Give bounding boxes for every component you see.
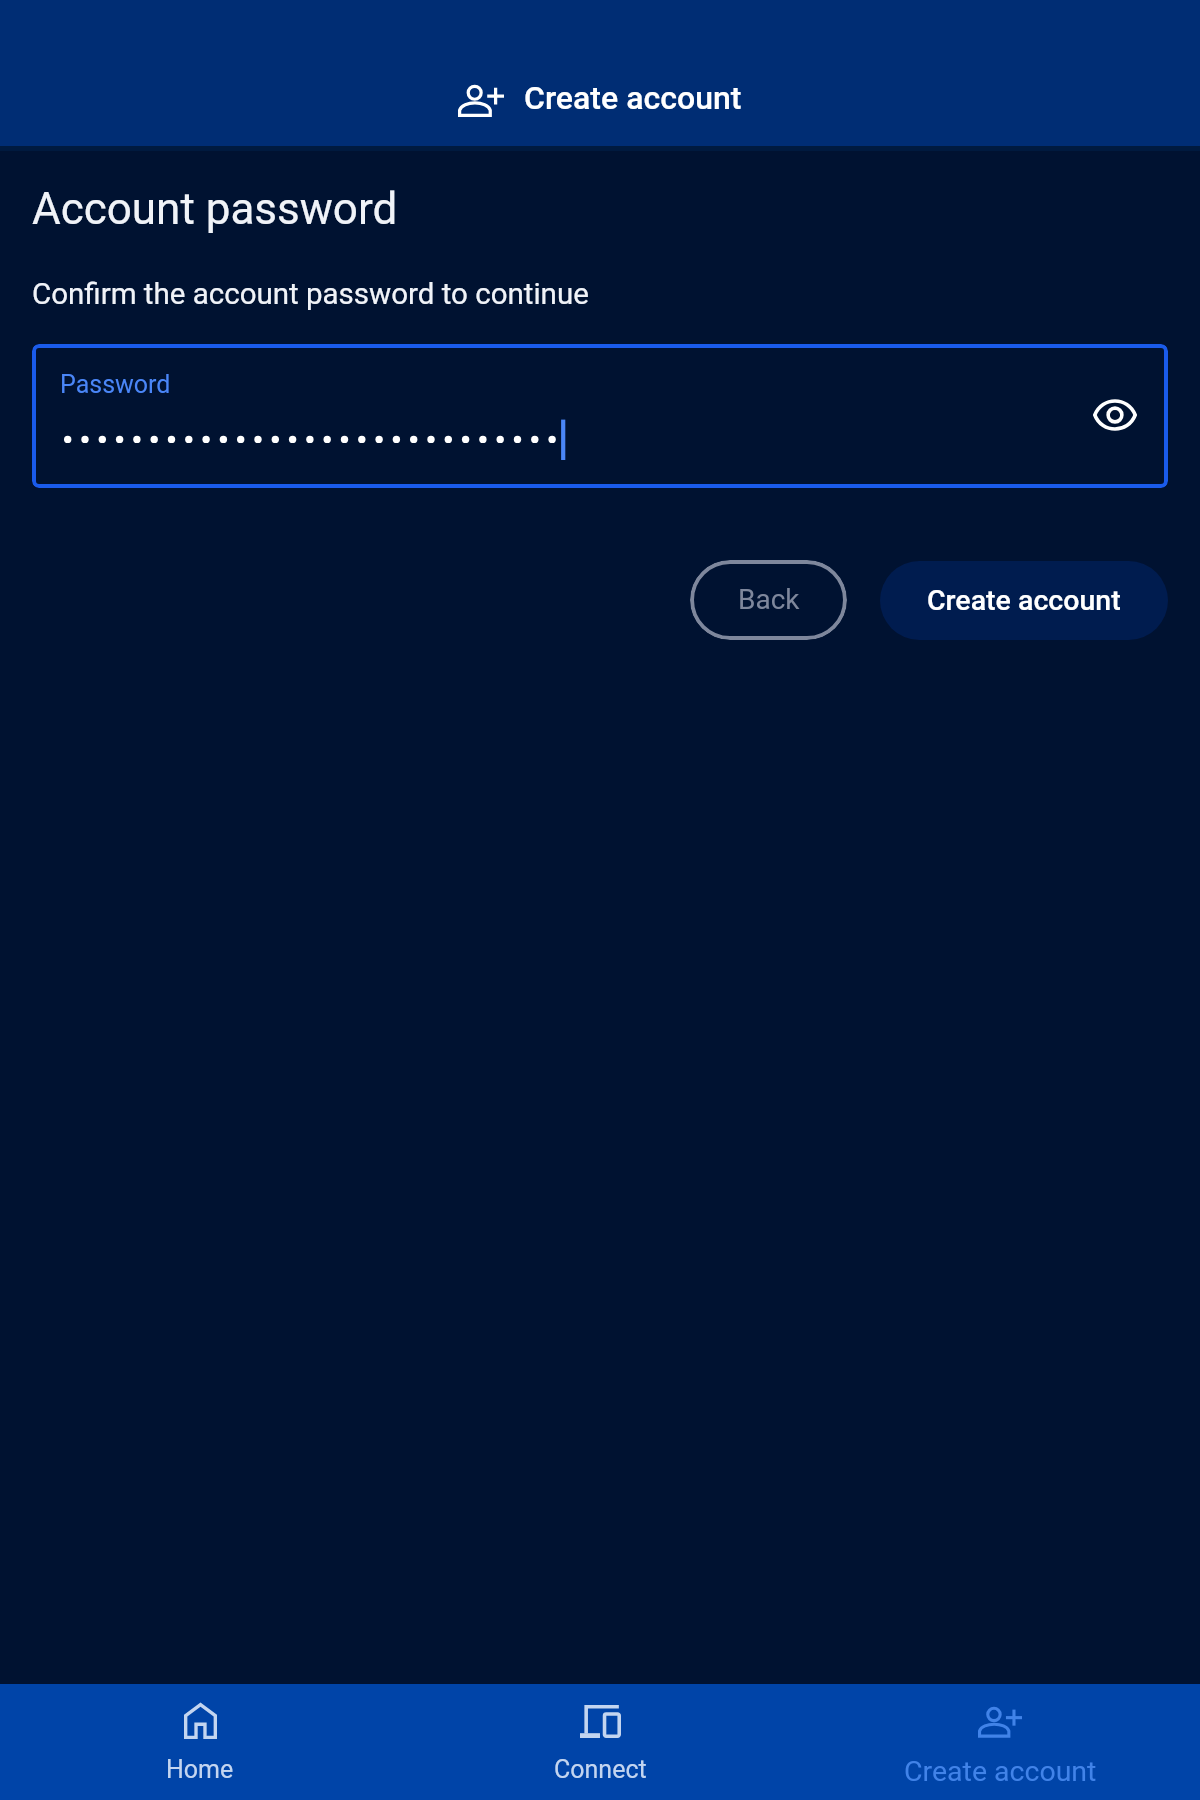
staticText: Create account — [904, 1755, 1097, 1788]
staticText: Confirm the account password to continue — [32, 277, 589, 312]
button[interactable]: Create account — [458, 84, 742, 122]
button[interactable]: Create account — [800, 1684, 1200, 1800]
staticText: Password — [60, 370, 171, 399]
staticText: Create account — [524, 79, 742, 117]
staticText: Home — [166, 1755, 234, 1784]
staticText: Back — [738, 583, 800, 616]
staticText: Connect — [554, 1755, 647, 1784]
button[interactable]: Back — [690, 560, 847, 640]
button[interactable]: Password — [32, 344, 1168, 488]
staticText: Create account — [927, 584, 1121, 617]
button[interactable]: Create account — [880, 561, 1168, 640]
staticText: Account password — [32, 183, 398, 235]
button[interactable]: Connect — [400, 1684, 800, 1800]
button[interactable]: Home — [0, 1684, 400, 1800]
button[interactable]: Show password — [1082, 382, 1148, 448]
